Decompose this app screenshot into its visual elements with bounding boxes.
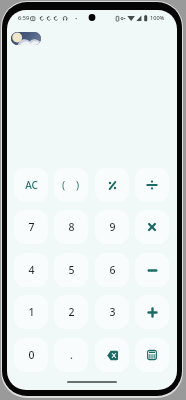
- staticText: 0: [28, 348, 35, 362]
- button[interactable]: 9: [95, 210, 129, 244]
- staticText: ): [76, 178, 80, 192]
- staticText: 2: [68, 305, 75, 319]
- staticText: 100%: [150, 14, 165, 22]
- button[interactable]: 7: [14, 210, 48, 244]
- button[interactable]: Backspace: [95, 338, 129, 372]
- button[interactable]: 5: [54, 253, 88, 287]
- staticText: 3: [109, 305, 116, 319]
- staticText: 8: [68, 220, 75, 234]
- button[interactable]: History: [135, 338, 169, 372]
- staticText: 6:59: [18, 14, 30, 22]
- button[interactable]: 3: [95, 295, 129, 329]
- button[interactable]: Plus: [135, 295, 169, 329]
- staticText: AC: [25, 178, 38, 192]
- button[interactable]: 4: [14, 253, 48, 287]
- button[interactable]: 2: [54, 295, 88, 329]
- button[interactable]: Weather: [11, 32, 41, 45]
- button[interactable]: Parentheses: [54, 168, 88, 202]
- staticText: .: [70, 348, 73, 362]
- button[interactable]: AC: [14, 168, 48, 202]
- button[interactable]: .: [54, 338, 88, 372]
- button[interactable]: 6: [95, 253, 129, 287]
- staticText: 7: [28, 220, 35, 234]
- button[interactable]: Multiply: [135, 210, 169, 244]
- button[interactable]: Minus: [135, 253, 169, 287]
- button[interactable]: Divide: [135, 168, 169, 202]
- button[interactable]: 8: [54, 210, 88, 244]
- staticText: 4: [28, 263, 35, 277]
- staticText: 6: [109, 263, 116, 277]
- staticText: (: [62, 178, 66, 192]
- button[interactable]: 1: [14, 295, 48, 329]
- staticText: 5: [68, 263, 75, 277]
- button[interactable]: 0: [14, 338, 48, 372]
- button[interactable]: Percent: [95, 168, 129, 202]
- staticText: 9: [109, 220, 116, 234]
- staticText: 1: [28, 305, 35, 319]
